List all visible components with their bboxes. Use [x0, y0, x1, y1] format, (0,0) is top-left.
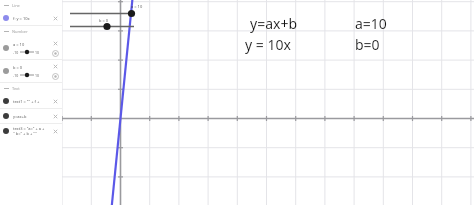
button[interactable]: Number	[0, 26, 62, 37]
button[interactable]: Close	[52, 40, 59, 47]
staticText: 10	[35, 50, 40, 55]
button[interactable]: Play animation	[52, 50, 59, 57]
staticText: -10	[13, 73, 19, 78]
button[interactable]: Toggle visibility	[3, 113, 9, 119]
staticText: b = 0	[13, 65, 23, 70]
button[interactable]: Toggle visibility	[0, 124, 62, 138]
button[interactable]: Toggle visibility	[0, 94, 62, 108]
button[interactable]: Toggle visibility	[3, 98, 9, 104]
button[interactable]: Toggle visibility	[0, 109, 62, 123]
button[interactable]: Close	[52, 113, 59, 120]
staticText: text3 = "a=" + a +	[13, 126, 45, 131]
staticText: Number	[12, 29, 28, 34]
button[interactable]: Line	[0, 0, 62, 11]
staticText: -10	[13, 50, 19, 55]
button[interactable]: Toggle visibility	[3, 68, 9, 74]
button[interactable]: Toggle visibility	[0, 11, 62, 25]
button[interactable]: Close	[52, 128, 59, 135]
staticText: b = 0	[99, 18, 109, 23]
button[interactable]: Close	[52, 15, 59, 22]
staticText: a = 10	[13, 42, 25, 47]
staticText: Text	[12, 86, 20, 91]
staticText: b=0	[355, 35, 380, 54]
button[interactable]: Close	[52, 98, 59, 105]
button[interactable]: Text	[0, 83, 62, 94]
button[interactable]: Toggle visibility	[0, 37, 62, 59]
staticText: y = 10x	[245, 35, 291, 54]
staticText: 10	[35, 73, 40, 78]
button[interactable]: Toggle visibility	[0, 60, 62, 82]
button[interactable]: Toggle visibility	[3, 45, 9, 51]
staticText: y=ax+b	[250, 14, 298, 33]
staticText: y=ax+b	[13, 114, 27, 119]
staticText: f: y = 10x	[13, 16, 30, 21]
staticText: text1 = "" + f +	[13, 99, 40, 104]
staticText: a = 10	[131, 4, 143, 9]
button[interactable]: Toggle visibility	[3, 128, 9, 134]
staticText: Line	[12, 3, 20, 8]
staticText: " b=" + b + ""	[13, 131, 37, 136]
button[interactable]: Play animation	[52, 73, 59, 80]
button[interactable]: Toggle visibility	[3, 15, 9, 21]
staticText: a=10	[355, 14, 387, 33]
button[interactable]: Close	[52, 63, 59, 70]
